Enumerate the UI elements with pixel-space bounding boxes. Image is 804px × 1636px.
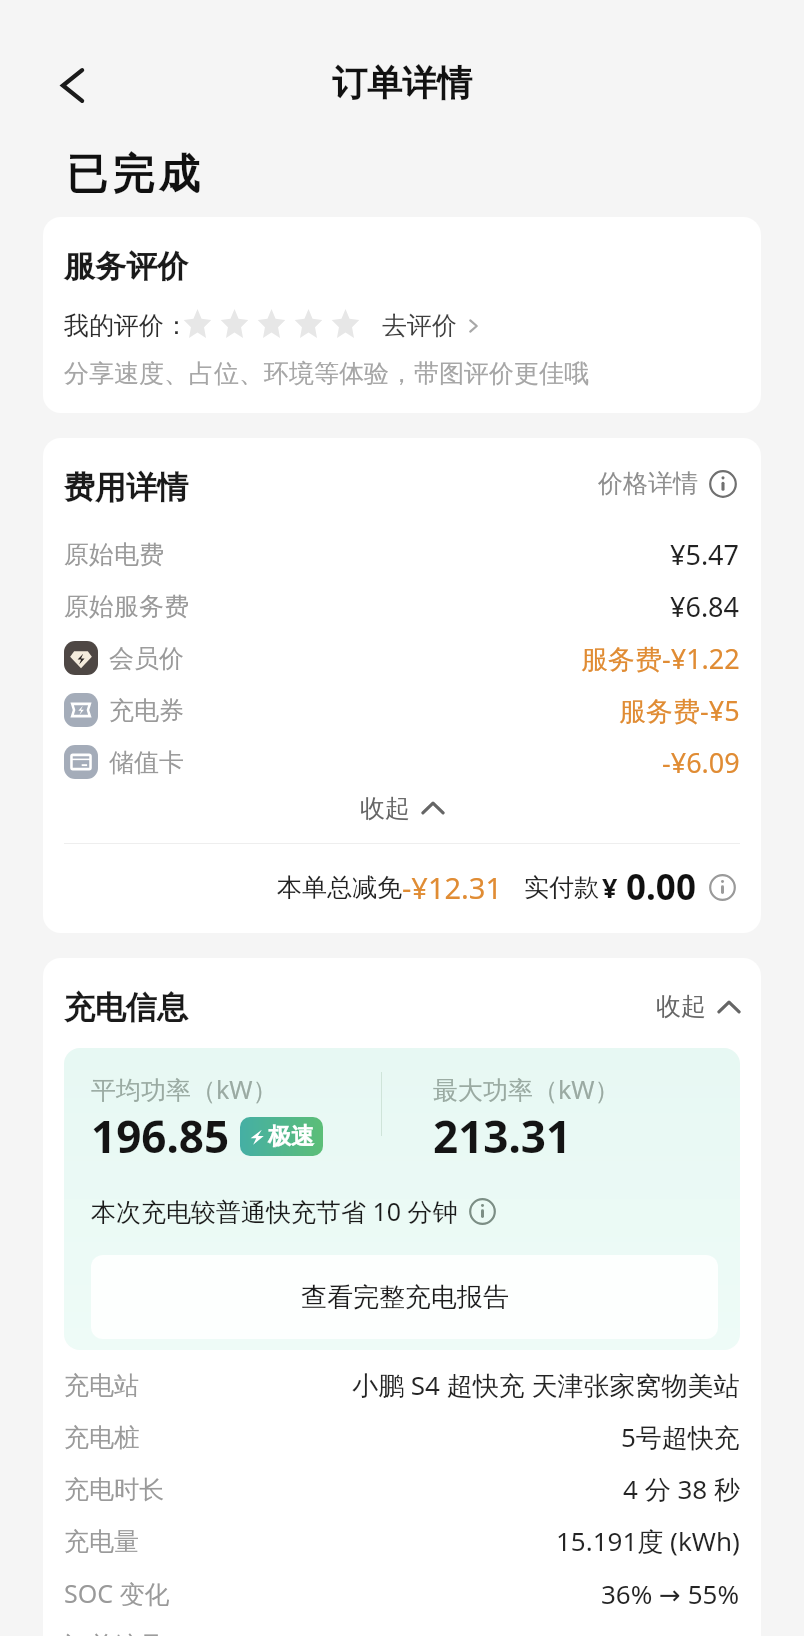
staticText: 储值卡 [109, 747, 184, 778]
staticText: 充电时长 [64, 1474, 164, 1505]
button[interactable]: 充电量 [64, 1515, 740, 1567]
staticText: 本次充电较普通快充节省 10 分钟 [91, 1194, 458, 1228]
staticText: 0.00 [626, 863, 696, 911]
staticText: 最大功率（kW） [433, 1072, 620, 1106]
staticText: 查看完整充电报告 [301, 1281, 509, 1314]
staticText: 价格详情 [598, 468, 698, 499]
button[interactable]: 查看完整充电报告 [91, 1255, 718, 1339]
staticText: SOC 变化 [64, 1576, 170, 1610]
staticText: 会员价 [109, 643, 184, 674]
staticText: 原始服务费 [64, 591, 189, 622]
staticText: 收起 [360, 793, 410, 824]
staticText: 服务评价 [64, 247, 188, 286]
staticText: 36% → 55% [601, 1576, 740, 1611]
staticText: 充电量 [64, 1526, 139, 1557]
staticText: 收起 [656, 991, 706, 1022]
button[interactable]: 储值卡 [64, 736, 740, 788]
button[interactable]: 去评价 [382, 310, 478, 341]
staticText: 213.31 [433, 1106, 572, 1166]
staticText: 充电站 [64, 1370, 139, 1401]
staticText: ¥6.84 [670, 588, 740, 625]
staticText: ¥5.47 [670, 536, 740, 573]
staticText: 服务费-¥5 [619, 692, 740, 729]
button[interactable]: 会员价 [64, 632, 740, 684]
staticText: 订单编号 [64, 1630, 164, 1636]
button[interactable]: 原始电费 [64, 528, 740, 580]
button[interactable]: 订单编号 [64, 1619, 740, 1636]
staticText: 极速 [268, 1122, 314, 1151]
button[interactable]: 充电站 [64, 1359, 740, 1411]
button[interactable]: 充电时长 [64, 1463, 740, 1515]
staticText: 订单详情 [332, 61, 472, 105]
button[interactable]: 收起 [656, 988, 740, 1022]
staticText: -¥6.09 [662, 744, 740, 781]
staticText: -¥12.31 [402, 868, 503, 907]
staticText: 实付款 [524, 872, 599, 903]
staticText: 已完成 [64, 149, 202, 201]
button[interactable]: 收起 [64, 788, 740, 828]
staticText: 4 分 38 秒 [623, 1471, 740, 1507]
staticText: 5号超快充 [621, 1419, 740, 1455]
staticText: 充电信息 [64, 988, 188, 1027]
button[interactable]: 价格详情 [598, 468, 740, 499]
staticText: 充电桩 [64, 1422, 139, 1453]
staticText: 充电券 [109, 695, 184, 726]
button[interactable]: Back [38, 51, 106, 119]
staticText: ¥ [602, 869, 618, 906]
button[interactable]: 原始服务费 [64, 580, 740, 632]
staticText: 服务费-¥1.22 [581, 640, 740, 677]
staticText: 分享速度、占位、环境等体验，带图评价更佳哦 [64, 358, 589, 389]
staticText: 去评价 [382, 310, 457, 341]
staticText: 小鹏 S4 超快充 天津张家窝物美站 [352, 1367, 740, 1403]
staticText: 平均功率（kW） [91, 1072, 278, 1106]
staticText: 原始电费 [64, 539, 164, 570]
staticText: 我的评价： [64, 310, 189, 341]
staticText: 196.85 [91, 1106, 230, 1166]
button[interactable]: 充电券 [64, 684, 740, 736]
staticText: 费用详情 [64, 468, 188, 507]
button[interactable]: 充电桩 [64, 1411, 740, 1463]
staticText: 本单总减免 [277, 872, 402, 903]
button[interactable]: SOC 变化 [64, 1567, 740, 1619]
staticText: 15.191度 (kWh) [556, 1523, 740, 1559]
